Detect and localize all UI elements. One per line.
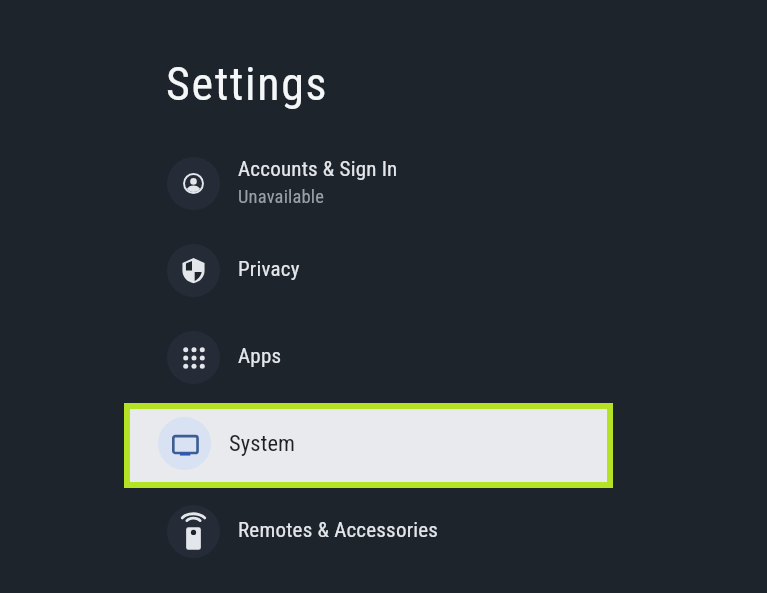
- staticText: Privacy: [238, 257, 300, 282]
- staticText: Settings: [166, 57, 329, 111]
- staticText: Apps: [238, 344, 282, 369]
- button[interactable]: Privacy: [125, 227, 612, 313]
- button[interactable]: System: [124, 403, 613, 488]
- button[interactable]: Accounts & Sign In: [125, 140, 612, 226]
- staticText: Unavailable: [238, 186, 325, 208]
- staticText: Accounts & Sign In: [238, 157, 398, 182]
- button[interactable]: Remotes & Accessories: [125, 488, 612, 574]
- staticText: System: [229, 430, 296, 456]
- button[interactable]: Apps: [125, 314, 612, 400]
- staticText: Remotes & Accessories: [238, 518, 439, 543]
